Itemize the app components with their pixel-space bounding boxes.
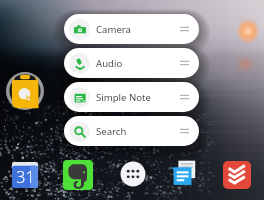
button[interactable]: Calendar	[12, 162, 38, 188]
staticText: Search	[96, 125, 127, 138]
button[interactable]: Search	[64, 116, 199, 146]
button[interactable]: Audio	[64, 48, 199, 78]
button[interactable]: All apps	[120, 161, 146, 187]
staticText: Audio	[96, 57, 123, 70]
button[interactable]: Simple Note	[64, 82, 199, 112]
staticText: Simple Note	[96, 91, 151, 104]
button[interactable]: Evernote	[63, 160, 93, 190]
button[interactable]: Todoist	[223, 161, 251, 189]
staticText: 31	[16, 166, 35, 188]
button[interactable]: Messages	[170, 159, 198, 187]
staticText: Camera	[96, 23, 131, 36]
button[interactable]: Assistant bubble	[6, 72, 44, 110]
button[interactable]: Camera	[64, 14, 199, 44]
